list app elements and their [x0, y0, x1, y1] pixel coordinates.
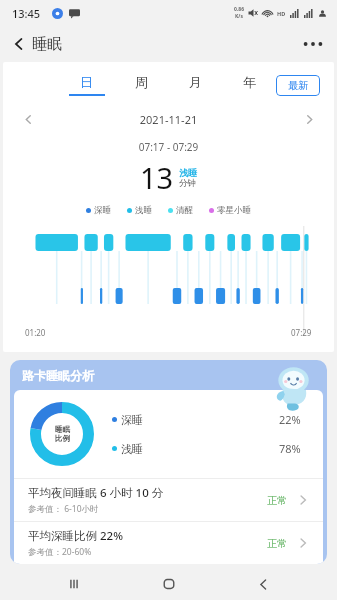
button[interactable]: Back [6, 33, 32, 55]
staticText: 07:17 - 07:29 [3, 140, 334, 154]
button[interactable]: Previous day [17, 108, 39, 130]
button[interactable]: 平均深睡比例 22% [14, 522, 323, 564]
staticText: 参考值： 6-10小时 [28, 503, 99, 515]
staticText: 比例 [55, 434, 70, 443]
staticText: 周 [135, 74, 148, 90]
button[interactable]: More options [297, 35, 329, 53]
button[interactable]: Next day [298, 108, 320, 130]
staticText: 日 [80, 74, 93, 90]
button[interactable]: Back [243, 568, 283, 600]
button[interactable]: 周 [114, 72, 168, 98]
staticText: 2021-11-21 [39, 112, 298, 127]
staticText: 平均深睡比例 22% [28, 528, 123, 544]
staticText: 正常 [267, 494, 287, 507]
staticText: 最新 [288, 79, 308, 92]
staticText: 13 [140, 158, 174, 197]
staticText: 深睡 [121, 413, 143, 427]
staticText: 路卡睡眠分析 [22, 368, 94, 383]
staticText: 清醒 [176, 205, 193, 216]
button[interactable]: 日 [59, 72, 114, 98]
staticText: 22% [279, 412, 301, 427]
button[interactable]: 平均夜间睡眠 6 小时 10 分 [14, 479, 323, 521]
staticText: 睡眠 [55, 425, 70, 434]
staticText: 分钟 [179, 178, 196, 189]
staticText: 年 [243, 74, 256, 90]
staticText: 零星小睡 [217, 205, 251, 216]
staticText: 07:29 [291, 327, 312, 338]
staticText: 正常 [267, 537, 287, 550]
staticText: HD [277, 10, 286, 17]
staticText: 浅睡 [135, 205, 152, 216]
button[interactable]: 月 [168, 72, 222, 98]
staticText: 浅睡 [121, 442, 143, 456]
staticText: 深睡 [94, 205, 111, 216]
staticText: 月 [189, 74, 202, 90]
button[interactable]: Recent apps [54, 568, 94, 600]
button[interactable]: 年 [222, 72, 276, 98]
staticText: 睡眠 [32, 35, 62, 54]
staticText: 浅睡 [179, 167, 197, 178]
staticText: 01:20 [25, 327, 46, 338]
staticText: 参考值：20-60% [28, 546, 92, 558]
staticText: 平均夜间睡眠 6 小时 10 分 [28, 485, 164, 501]
staticText: 78% [279, 441, 301, 456]
staticText: 0.86 [234, 6, 244, 13]
staticText: K/s [235, 13, 243, 20]
button[interactable]: 最新 [276, 75, 320, 96]
button[interactable]: Home [149, 568, 189, 600]
staticText: 13:45 [12, 6, 41, 21]
